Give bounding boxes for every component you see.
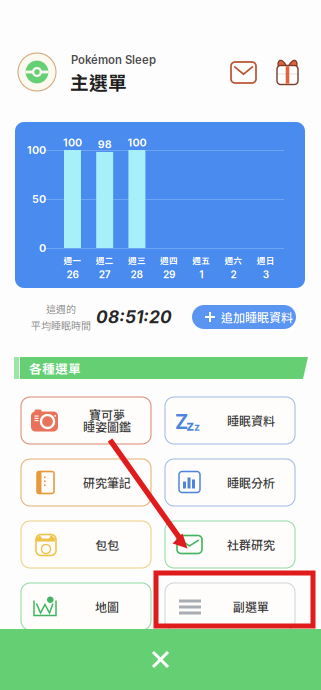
staticText: 研究筆記 — [83, 474, 131, 491]
staticText: 29 — [163, 268, 175, 281]
staticText: 28 — [130, 268, 143, 281]
staticText: 週三 — [128, 254, 146, 266]
button[interactable]: 包包 — [21, 521, 151, 568]
button[interactable]: 副選單 — [165, 583, 295, 630]
staticText: 睡姿圖鑑 — [83, 418, 131, 435]
staticText: 地圖 — [95, 598, 119, 615]
staticText: z — [186, 416, 194, 434]
staticText: 週四 — [160, 254, 178, 266]
button[interactable]: 地圖 — [21, 583, 151, 630]
staticText: z — [194, 420, 200, 433]
button[interactable]: Z — [165, 397, 295, 444]
staticText: 社群研究 — [227, 536, 275, 553]
staticText: 2 — [230, 268, 236, 281]
button[interactable]: 睡眠分析 — [165, 459, 295, 506]
staticText: 26 — [66, 268, 78, 281]
button[interactable]: 研究筆記 — [21, 459, 151, 506]
staticText: 08:51:20 — [96, 306, 172, 327]
staticText: 追加睡眠資料 — [221, 308, 293, 326]
staticText: 睡眠資料 — [227, 412, 275, 429]
staticText: 98 — [98, 138, 112, 151]
staticText: Z — [175, 409, 188, 434]
staticText: 3 — [263, 268, 269, 281]
staticText: 睡眠分析 — [227, 474, 275, 491]
staticText: 寶可夢 — [89, 406, 125, 423]
button[interactable]: 社群研究 — [165, 521, 295, 568]
staticText: 平均睡眠時間 — [31, 318, 91, 332]
staticText: 副選單 — [233, 598, 269, 615]
staticText: 50 — [32, 192, 46, 205]
button[interactable]: Mail — [227, 57, 260, 88]
staticText: 1 — [199, 268, 203, 281]
staticText: 週五 — [192, 254, 210, 266]
staticText: 包包 — [95, 536, 119, 553]
staticText: 100 — [63, 136, 82, 149]
staticText: 主選單 — [70, 68, 127, 95]
button[interactable]: 追加睡眠資料 — [192, 305, 296, 329]
button[interactable]: Close — [0, 629, 321, 690]
button[interactable]: Gifts — [271, 57, 304, 88]
staticText: 週二 — [96, 254, 114, 266]
button[interactable]: 寶可夢 — [21, 397, 151, 444]
staticText: 週六 — [224, 254, 242, 266]
staticText: 0 — [39, 241, 46, 254]
staticText: 這週的 — [46, 301, 76, 316]
staticText: 各種選單 — [29, 359, 81, 377]
staticText: Pokémon Sleep — [71, 53, 156, 67]
staticText: 100 — [27, 143, 46, 156]
staticText: 週日 — [257, 254, 275, 266]
staticText: 週一 — [63, 254, 81, 266]
staticText: 27 — [99, 268, 111, 281]
staticText: 100 — [127, 136, 146, 149]
